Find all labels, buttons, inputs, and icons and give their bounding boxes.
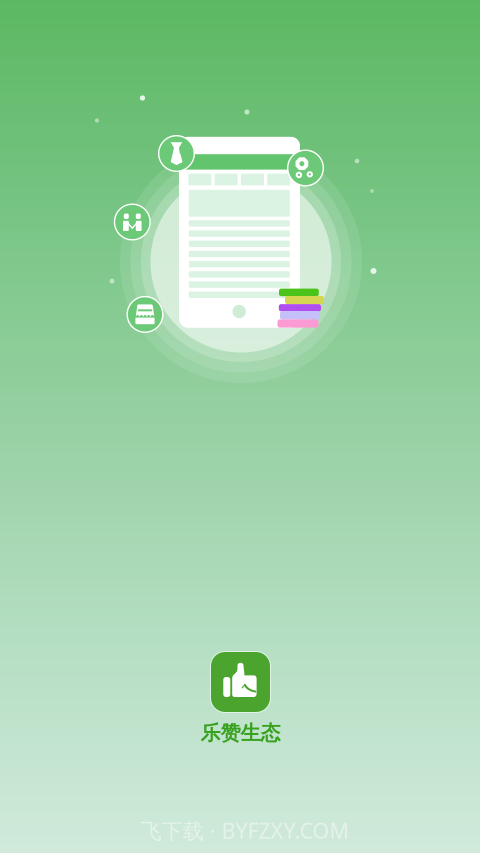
staticText: 乐赞生态 <box>200 721 280 745</box>
staticText: 飞下载 · BYFZXY.COM <box>140 816 348 845</box>
